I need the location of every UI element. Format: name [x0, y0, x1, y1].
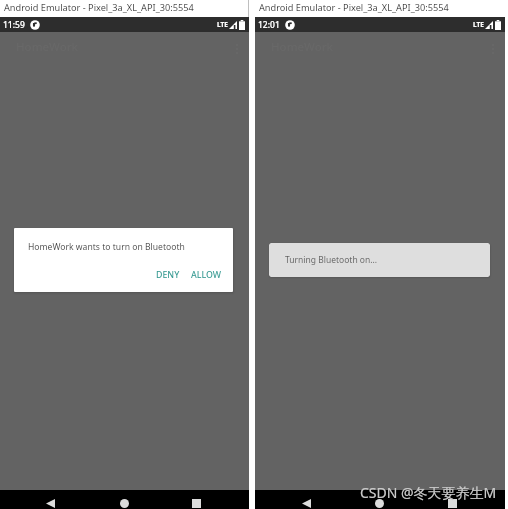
- button[interactable]: Recent apps: [184, 494, 208, 509]
- staticText: CSDN @冬天要养生M: [360, 483, 497, 502]
- button[interactable]: Recent apps: [440, 494, 464, 509]
- staticText: 12:01: [258, 19, 280, 31]
- staticText: Turning Bluetooth on...: [285, 254, 378, 266]
- button[interactable]: Back: [38, 494, 62, 509]
- staticText: DENY: [156, 269, 180, 281]
- button[interactable]: DENY: [152, 265, 184, 284]
- button[interactable]: Home: [367, 494, 391, 509]
- staticText: 11:59: [3, 19, 25, 31]
- staticText: ALLOW: [191, 269, 222, 281]
- button[interactable]: ALLOW: [188, 265, 225, 284]
- staticText: Android Emulator - Pixel_3a_XL_API_30:55…: [259, 1, 449, 14]
- staticText: LTE: [217, 20, 228, 29]
- staticText: LTE: [473, 20, 484, 29]
- staticText: Android Emulator - Pixel_3a_XL_API_30:55…: [4, 1, 194, 14]
- button[interactable]: Home: [112, 494, 136, 509]
- button[interactable]: Back: [294, 494, 318, 509]
- staticText: HomeWork wants to turn on Bluetooth: [28, 241, 185, 253]
